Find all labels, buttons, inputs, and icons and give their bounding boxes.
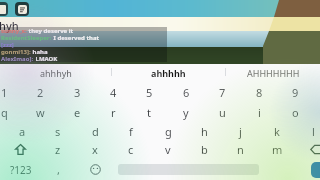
button[interactable]: Chat xyxy=(15,2,29,16)
button[interactable]: b xyxy=(186,140,222,159)
button[interactable]: i xyxy=(241,103,277,122)
staticText: ahhhyh xyxy=(40,67,72,79)
button[interactable]: j xyxy=(222,122,258,141)
button[interactable]: k xyxy=(259,122,295,141)
staticText: w xyxy=(36,105,45,120)
button[interactable]: x xyxy=(77,140,113,159)
staticText: f xyxy=(129,124,133,139)
staticText: t xyxy=(147,105,151,120)
staticText: z xyxy=(55,142,61,157)
staticText: n xyxy=(237,142,244,157)
staticText: d xyxy=(92,124,99,139)
staticText: q xyxy=(1,105,8,120)
staticText: 9 xyxy=(292,85,299,100)
staticText: v xyxy=(165,142,171,157)
button[interactable]: AHHHHHHH xyxy=(226,64,320,82)
button[interactable]: l xyxy=(295,122,320,141)
button[interactable]: d xyxy=(77,122,113,141)
button[interactable]: 0 xyxy=(313,83,320,102)
staticText: x xyxy=(92,142,98,157)
staticText: e xyxy=(74,105,81,120)
staticText: I deserved that xyxy=(52,34,100,41)
staticText: i xyxy=(258,105,261,120)
staticText: l xyxy=(312,124,315,139)
button[interactable]: c xyxy=(113,140,149,159)
button[interactable]: Player list xyxy=(0,2,8,16)
staticText: s xyxy=(55,124,61,139)
button[interactable]: Space xyxy=(118,164,259,175)
button[interactable]: 4 xyxy=(95,83,131,102)
button[interactable]: 8 xyxy=(241,83,277,102)
button[interactable]: , xyxy=(40,160,76,179)
button[interactable]: 6 xyxy=(168,83,204,102)
staticText: AHHHHHHH xyxy=(247,67,300,79)
button[interactable]: w xyxy=(22,103,58,122)
staticText: j xyxy=(239,124,242,139)
button[interactable]: Backspace xyxy=(296,139,320,159)
button[interactable]: n xyxy=(222,140,258,159)
button[interactable]: f xyxy=(113,122,149,141)
staticText: c xyxy=(128,142,134,157)
staticText: haha xyxy=(31,48,48,55)
button[interactable]: Enter xyxy=(311,162,320,178)
staticText: 1 xyxy=(1,85,8,100)
button[interactable]: 2 xyxy=(22,83,58,102)
staticText: ?123 xyxy=(10,163,32,177)
button[interactable]: 7 xyxy=(204,83,240,102)
button[interactable]: 1 xyxy=(0,83,22,102)
staticText: o xyxy=(292,105,299,120)
button[interactable]: 5 xyxy=(131,83,167,102)
button[interactable]: u xyxy=(204,103,240,122)
staticText: ResidentSleeper: xyxy=(1,34,52,41)
staticText: 4 xyxy=(110,85,117,100)
button[interactable]: Emoji xyxy=(78,159,112,180)
staticText: AlexImao]: xyxy=(1,55,34,62)
button[interactable]: s xyxy=(40,122,76,141)
button[interactable]: Shift xyxy=(0,139,40,159)
button[interactable]: ?123 xyxy=(0,159,42,180)
staticText: k xyxy=(274,124,280,139)
button[interactable]: 3 xyxy=(59,83,95,102)
staticText: 7 xyxy=(219,85,226,100)
staticText: m xyxy=(272,142,283,157)
button[interactable]: 9 xyxy=(277,83,313,102)
staticText: 5 xyxy=(146,85,153,100)
button[interactable]: e xyxy=(59,103,95,122)
staticText: 8 xyxy=(256,85,263,100)
button[interactable]: y xyxy=(168,103,204,122)
staticText: a xyxy=(19,124,26,139)
staticText: r xyxy=(111,105,116,120)
staticText: y xyxy=(183,105,189,120)
staticText: u xyxy=(219,105,226,120)
staticText: b xyxy=(201,142,208,157)
button[interactable]: r xyxy=(95,103,131,122)
staticText: g xyxy=(165,124,172,139)
button[interactable]: h xyxy=(186,122,222,141)
button[interactable]: q xyxy=(0,103,22,122)
staticText: gonmi13]: xyxy=(1,48,31,55)
staticText: 6 xyxy=(183,85,190,100)
button[interactable]: g xyxy=(150,122,186,141)
button[interactable]: z xyxy=(40,140,76,159)
staticText: , xyxy=(57,162,60,177)
button[interactable]: ahhhyh xyxy=(0,64,111,82)
staticText: h xyxy=(201,124,208,139)
staticText: LMAOK xyxy=(34,55,58,62)
button[interactable]: ahhhhh xyxy=(112,64,225,82)
staticText: they deserve it xyxy=(27,27,74,34)
staticText: [zzz] xyxy=(1,41,14,48)
button[interactable]: v xyxy=(150,140,186,159)
button[interactable]: m xyxy=(259,140,295,159)
staticText: hyh xyxy=(0,18,19,33)
staticText: 3 xyxy=(74,85,81,100)
staticText: sunny_x: xyxy=(1,27,27,34)
staticText: ahhhhh xyxy=(151,67,186,79)
button[interactable]: t xyxy=(131,103,167,122)
button[interactable]: o xyxy=(277,103,313,122)
staticText: 2 xyxy=(37,85,44,100)
button[interactable]: a xyxy=(4,122,40,141)
